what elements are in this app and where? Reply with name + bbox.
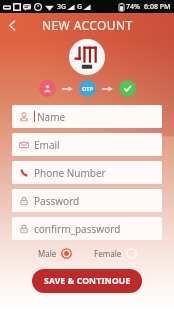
staticText: Male [38,248,57,259]
button[interactable]: confirm_password [12,217,162,240]
staticText: confirm_password [34,222,121,236]
button[interactable]: Phone Number [12,161,162,184]
button[interactable]: Account details step [39,80,56,97]
staticText: 74% [126,2,140,12]
button[interactable]: Password [12,189,162,212]
staticText: OTP [82,85,93,92]
staticText: Phone Number [34,166,106,180]
staticText: Female [94,248,122,259]
staticText: Password [34,194,80,208]
button[interactable]: Back [0,13,24,37]
button[interactable]: Email [12,133,162,156]
staticText: SAVE & CONTINOUE [44,275,131,287]
button[interactable]: Name [12,105,162,128]
staticText: 6:08 PM [144,2,171,12]
button[interactable]: SAVE & CONTINOUE [32,269,142,293]
button[interactable]: Female [92,246,139,261]
staticText: G [77,2,83,12]
button[interactable]: Done step [119,80,136,97]
staticText: Name [37,110,66,124]
staticText: NEW ACCOUNT [42,17,133,33]
button[interactable]: Male [36,246,74,261]
staticText: 3G [57,2,67,12]
staticText: Email [34,138,60,152]
button[interactable]: OTP step [79,80,96,97]
